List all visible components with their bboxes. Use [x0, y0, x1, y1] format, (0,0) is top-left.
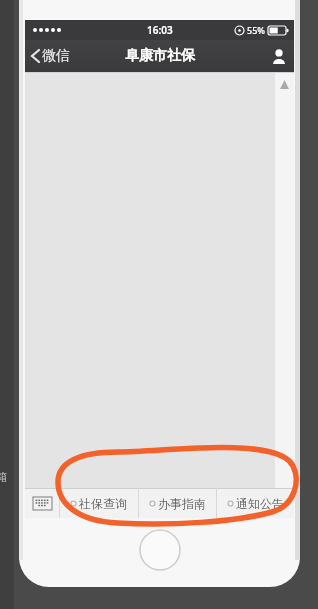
button[interactable]: Profile [264, 49, 294, 64]
staticText: 阜康市社保 [125, 47, 195, 65]
staticText: 55% [247, 24, 265, 36]
staticText: 微信 [42, 47, 70, 65]
staticText: 社保查询 [79, 496, 127, 511]
button[interactable]: Keyboard [25, 488, 59, 518]
staticText: 16:03 [147, 23, 173, 37]
staticText: 办事指南 [158, 496, 206, 511]
staticText: 箱 [0, 470, 7, 484]
button[interactable]: 通知公告 [217, 488, 294, 518]
button[interactable]: 微信 [25, 43, 76, 69]
button[interactable]: 办事指南 [139, 488, 216, 518]
button[interactable]: 社保查询 [60, 488, 138, 518]
staticText: 通知公告 [236, 496, 284, 511]
